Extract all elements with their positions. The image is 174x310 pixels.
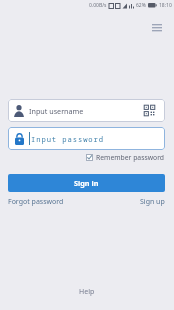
staticText: Sign in [74,178,99,188]
staticText: Input password [31,134,104,144]
staticText: 18:10 [159,2,172,9]
staticText: 62% [136,2,146,9]
button[interactable] [148,20,166,36]
button[interactable]: Input password [8,127,165,150]
staticText: Remember password [96,153,165,162]
button[interactable]: Forgot password [8,197,64,207]
button[interactable]: Sign in [8,174,165,192]
button[interactable]: Help [79,287,95,297]
staticText: 0.00B/s [89,2,107,9]
button[interactable]: Input username [8,99,165,122]
staticText: Sign up [140,197,165,207]
staticText: Input username [29,106,84,116]
staticText: Forgot password [8,197,64,207]
button[interactable]: Sign up [140,197,165,207]
staticText: Help [79,287,95,297]
button[interactable]: Remember password [86,153,165,162]
